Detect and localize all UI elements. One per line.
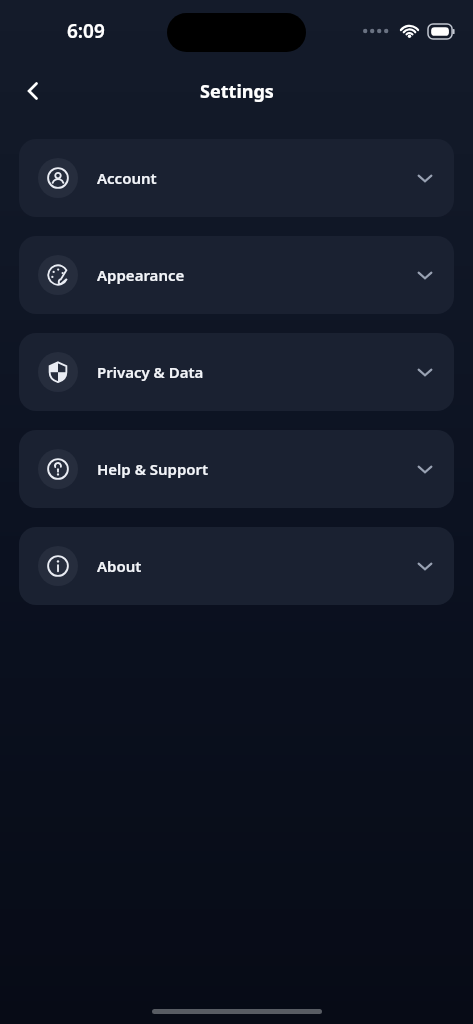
button[interactable]: Privacy & Data xyxy=(19,333,454,411)
button[interactable]: Appearance xyxy=(19,236,454,314)
staticText: Appearance xyxy=(97,265,185,285)
button[interactable]: Help & Support xyxy=(19,430,454,508)
staticText: Settings xyxy=(200,79,274,104)
button[interactable]: About xyxy=(19,527,454,605)
staticText: Help & Support xyxy=(97,459,209,479)
button[interactable]: Back xyxy=(10,68,56,114)
staticText: 6:09 xyxy=(67,18,105,44)
staticText: Privacy & Data xyxy=(97,362,204,382)
button[interactable]: Account xyxy=(19,139,454,217)
staticText: Account xyxy=(97,168,157,188)
staticText: About xyxy=(97,556,142,576)
